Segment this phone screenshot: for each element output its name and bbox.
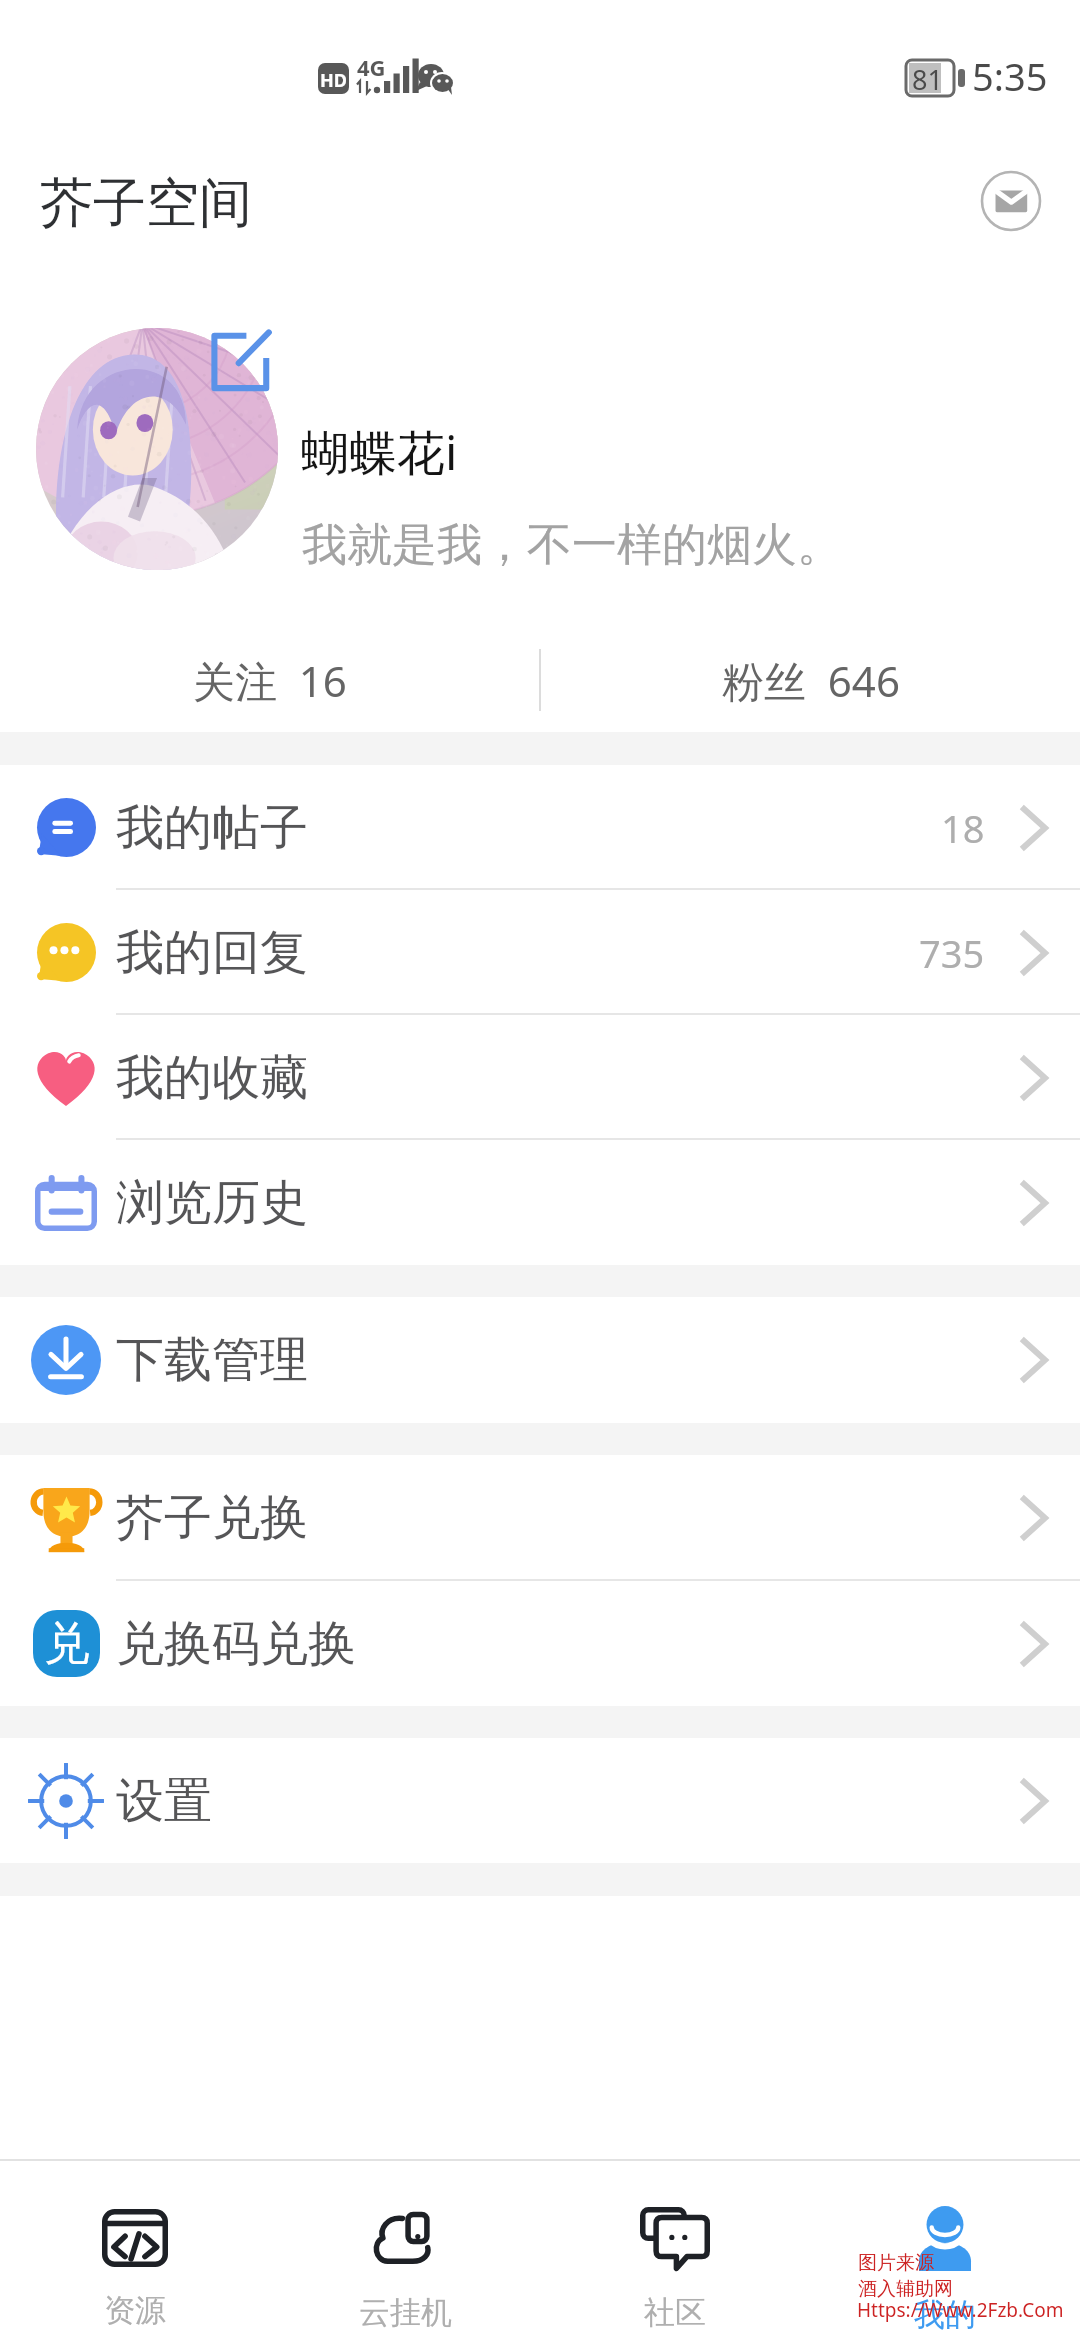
button[interactable]: 兑 (0, 1581, 1080, 1706)
button[interactable]: 我的帖子 (0, 765, 1080, 890)
button[interactable]: 芥子兑换 (0, 1455, 1080, 1581)
staticText: 设置 (116, 1771, 212, 1831)
button[interactable]: 设置 (0, 1738, 1080, 1863)
staticText: 下载管理 (116, 1330, 308, 1390)
staticText: 我的回复 (116, 923, 308, 983)
staticText: HD (320, 68, 347, 93)
button[interactable]: 下载管理 (0, 1297, 1080, 1423)
staticText: Https://Www.2Fzb.Com (857, 2297, 1064, 2323)
staticText: 我的收藏 (116, 1048, 308, 1108)
staticText: 蝴蝶花i (301, 419, 458, 485)
button[interactable]: 资源 (0, 2159, 270, 2340)
staticText: 81 (912, 61, 943, 98)
button[interactable]: 粉丝 646 (541, 637, 1080, 723)
button[interactable]: 浏览历史 (0, 1140, 1080, 1265)
button[interactable]: 关注 16 (0, 637, 539, 723)
button[interactable]: Messages (975, 165, 1047, 237)
button[interactable]: 社区 (540, 2159, 810, 2340)
staticText: 我的 (914, 2295, 976, 2334)
button[interactable]: 我的收藏 (0, 1015, 1080, 1140)
staticText: 浏览历史 (116, 1173, 308, 1233)
staticText: 图片来源 (858, 2251, 934, 2275)
staticText: 18 (941, 802, 985, 854)
staticText: 兑换码兑换 (116, 1614, 356, 1674)
staticText: 5:35 (972, 50, 1048, 102)
staticText: 社区 (644, 2293, 706, 2332)
staticText: 兑 (44, 1615, 90, 1673)
staticText: 我就是我，不一样的烟火。 (302, 517, 842, 574)
button[interactable]: 云挂机 (270, 2159, 540, 2340)
staticText: 芥子兑换 (116, 1488, 308, 1548)
staticText: 云挂机 (359, 2293, 452, 2332)
staticText: 关注 16 (193, 652, 347, 709)
staticText: 我的帖子 (116, 798, 308, 858)
staticText: 芥子空间 (40, 170, 252, 237)
staticText: 粉丝 646 (722, 652, 900, 709)
staticText: 酒入辅助网 (858, 2277, 953, 2301)
button[interactable]: 我的 (810, 2159, 1080, 2340)
staticText: 资源 (104, 2291, 166, 2330)
staticText: 4G (357, 52, 386, 82)
staticText: 735 (919, 927, 985, 979)
button[interactable]: 我的回复 (0, 890, 1080, 1015)
